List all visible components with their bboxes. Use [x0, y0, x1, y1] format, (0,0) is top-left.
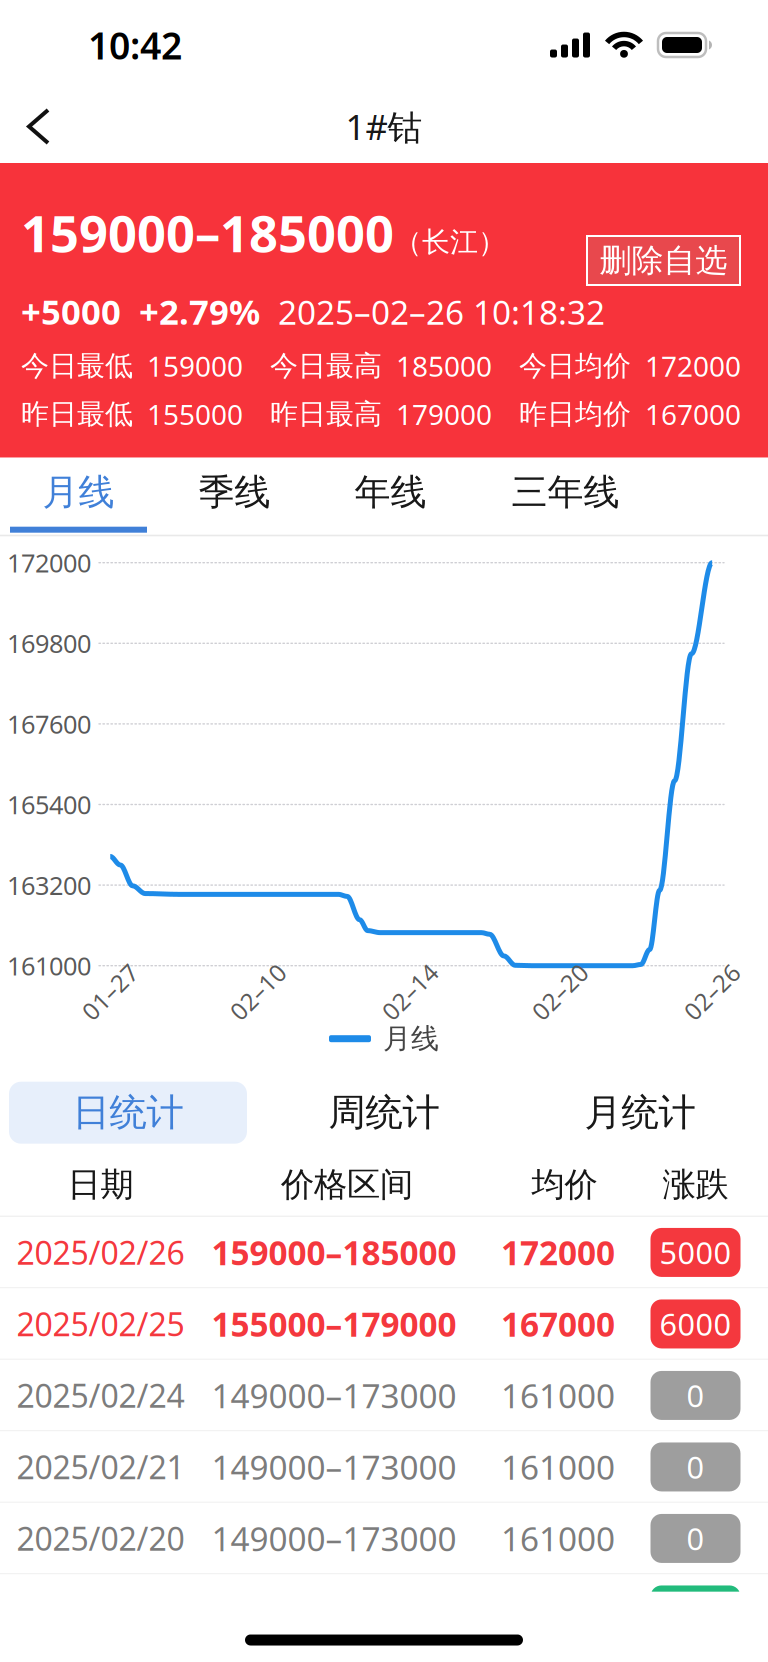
staticText: （长江）: [394, 225, 506, 259]
staticText: 年线: [354, 470, 426, 514]
staticText: 今日最高: [270, 349, 382, 383]
staticText: 02–26: [678, 976, 746, 1008]
staticText: 159000–185000: [211, 1230, 456, 1275]
button[interactable]: 年线: [312, 458, 469, 537]
staticText: 172000: [501, 1230, 615, 1275]
staticText: 169800: [7, 626, 91, 660]
staticText: 5000: [659, 1232, 731, 1273]
staticText: 185000: [396, 347, 492, 384]
button[interactable]: 日统计: [0, 1073, 256, 1153]
staticText: 01–27: [76, 976, 144, 1008]
staticText: 2025/02/21: [16, 1446, 184, 1488]
staticText: 日统计: [72, 1090, 183, 1136]
button[interactable]: 月线: [0, 458, 157, 537]
staticText: 月统计: [584, 1090, 695, 1136]
staticText: 10:42: [88, 20, 182, 70]
staticText: 1#钴: [345, 103, 422, 149]
staticText: 月线: [383, 1021, 439, 1056]
staticText: 165400: [7, 788, 91, 821]
staticText: 167600: [7, 707, 91, 741]
staticText: 161000: [501, 1445, 615, 1489]
staticText: 149000–173000: [211, 1373, 456, 1418]
staticText: 172000: [7, 546, 91, 579]
staticText: 02–14: [376, 976, 444, 1008]
staticText: 161000: [501, 1516, 615, 1561]
staticText: 155000: [147, 395, 243, 433]
staticText: 周统计: [328, 1090, 439, 1136]
staticText: 2025/02/26: [16, 1231, 184, 1274]
staticText: 149000–173000: [211, 1516, 456, 1561]
button[interactable]: 2025/02/26: [0, 1217, 768, 1288]
staticText: 2025–02–26 10:18:32: [260, 290, 605, 334]
staticText: 167000: [645, 395, 741, 433]
staticText: 02–10: [224, 976, 292, 1008]
staticText: 163200: [7, 868, 91, 902]
staticText: 2025/02/24: [16, 1374, 184, 1417]
staticText: 167000: [501, 1302, 615, 1346]
button[interactable]: 周统计: [256, 1073, 512, 1153]
staticText: 159000: [147, 347, 243, 384]
staticText: 159000–185000: [21, 199, 394, 266]
staticText: 2025/02/25: [16, 1303, 184, 1345]
button[interactable]: 2025/02/20: [0, 1503, 768, 1574]
staticText: 月线: [42, 470, 114, 514]
staticText: 0: [686, 1518, 704, 1559]
staticText: 0: [686, 1447, 704, 1487]
button[interactable]: 季线: [157, 458, 312, 537]
button[interactable]: 删除自选: [587, 236, 740, 285]
button[interactable]: 2025/02/25: [0, 1288, 768, 1360]
staticText: 三年线: [511, 470, 619, 514]
button[interactable]: 三年线: [469, 458, 662, 537]
staticText: 昨日最低: [21, 397, 133, 431]
staticText: 161000: [501, 1373, 615, 1418]
staticText: 155000–179000: [211, 1302, 456, 1346]
staticText: 价格区间: [281, 1164, 413, 1205]
staticText: 昨日均价: [519, 397, 631, 431]
staticText: 02–20: [526, 976, 594, 1008]
staticText: 161000: [7, 949, 91, 982]
staticText: 172000: [645, 347, 741, 384]
staticText: 日期: [67, 1164, 133, 1205]
staticText: 涨跌: [662, 1164, 728, 1205]
staticText: -3000: [654, 1590, 736, 1630]
button[interactable]: 2025/02/24: [0, 1360, 768, 1431]
staticText: 昨日最高: [270, 397, 382, 431]
staticText: 均价: [531, 1164, 597, 1205]
button[interactable]: Back: [0, 94, 70, 159]
staticText: 季线: [198, 470, 270, 514]
staticText: 6000: [659, 1304, 731, 1344]
button[interactable]: 2025/02/21: [0, 1431, 768, 1503]
staticText: 149000–173000: [211, 1445, 456, 1489]
button[interactable]: 2025/02/19: [0, 1574, 768, 1646]
staticText: 0: [686, 1375, 704, 1416]
staticText: 2025/02/20: [16, 1517, 184, 1560]
staticText: +5000 +2.79%: [21, 288, 260, 334]
staticText: 179000: [396, 395, 492, 433]
staticText: 今日均价: [519, 349, 631, 383]
button[interactable]: 月统计: [512, 1073, 768, 1153]
staticText: 今日最低: [21, 349, 133, 383]
staticText: 删除自选: [599, 241, 727, 280]
